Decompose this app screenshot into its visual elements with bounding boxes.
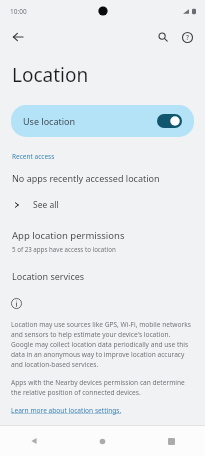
staticText: See all: [33, 199, 59, 211]
button[interactable]: Back: [5, 24, 31, 50]
button[interactable]: App location permissions: [0, 227, 205, 255]
button[interactable]: Help: [175, 25, 199, 49]
staticText: ?: [186, 33, 189, 42]
button[interactable]: Search: [151, 25, 175, 49]
staticText: App location permissions: [12, 229, 125, 242]
button[interactable]: Use location: [11, 105, 194, 137]
button[interactable]: Location services: [0, 267, 205, 285]
button[interactable]: Home: [85, 426, 119, 456]
staticText: Recent access: [12, 152, 55, 161]
button[interactable]: Learn more about location settings.: [11, 406, 122, 415]
staticText: No apps recently accessed location: [12, 172, 160, 184]
staticText: Location services: [12, 270, 85, 282]
staticText: Location: [12, 62, 89, 88]
button[interactable]: See all: [0, 196, 205, 214]
staticText: 5 of 23 apps have access to location: [12, 245, 116, 253]
staticText: 10:00: [10, 7, 27, 16]
staticText: Use location: [23, 115, 76, 127]
button[interactable]: Back: [17, 426, 51, 456]
button[interactable]: Recent apps: [154, 426, 188, 456]
staticText: Apps with the Nearby devices permission …: [11, 378, 194, 397]
staticText: Location may use sources like GPS, Wi-Fi…: [11, 320, 194, 369]
staticText: Learn more about location settings.: [11, 406, 122, 415]
